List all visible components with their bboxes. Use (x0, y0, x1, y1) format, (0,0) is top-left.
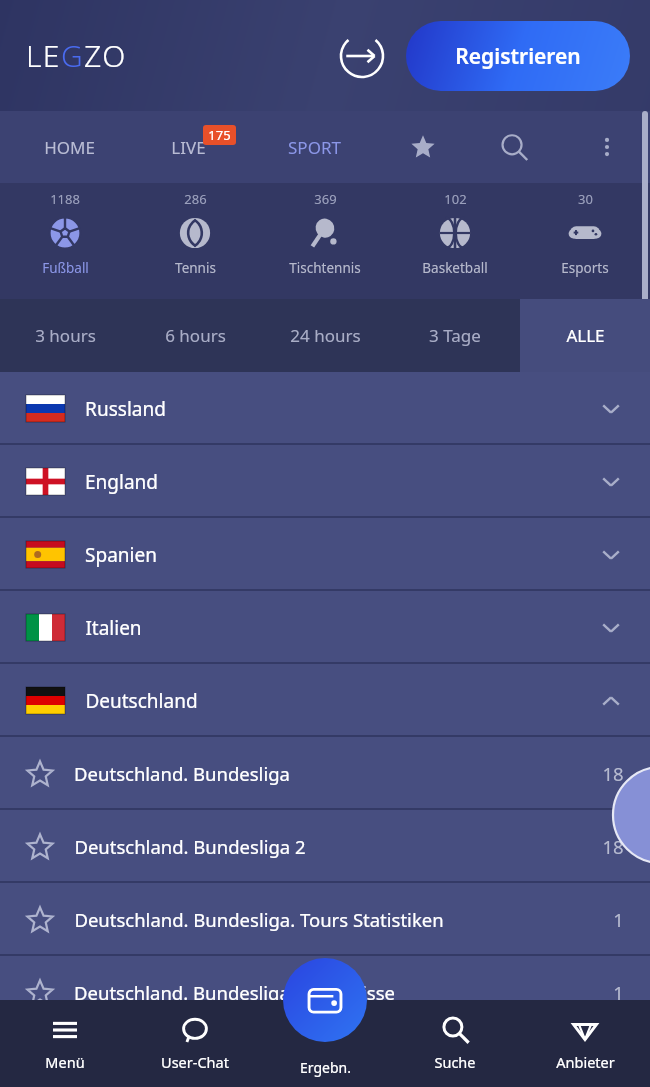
staticText: Deutschland. Bundesliga. Tours Statistik… (74, 907, 444, 932)
button[interactable]: Search (483, 116, 545, 178)
button[interactable]: Login (334, 28, 390, 84)
staticText: User-Chat (161, 1052, 229, 1072)
button[interactable]: Russland (0, 372, 650, 445)
button[interactable]: 286 (130, 183, 260, 299)
button[interactable]: Favourites (392, 116, 454, 178)
button[interactable]: 6 hours (130, 299, 260, 372)
button[interactable]: Deutschland (0, 664, 650, 737)
button[interactable]: LIVE (133, 111, 243, 183)
staticText: Deutschland. Bundesliga (74, 761, 290, 786)
staticText: 3 Tage (429, 324, 481, 347)
button[interactable]: England (0, 445, 650, 518)
button[interactable]: Spanien (0, 518, 650, 591)
staticText: 1 (613, 907, 624, 932)
staticText: 175 (208, 126, 231, 144)
staticText: Spanien (85, 542, 157, 568)
staticText: 3 hours (35, 324, 96, 347)
button[interactable]: Registrieren (406, 21, 630, 91)
button[interactable]: Deutschland. Bundesliga (0, 737, 650, 810)
staticText: Menü (45, 1052, 85, 1072)
button[interactable]: Italien (0, 591, 650, 664)
button[interactable]: User-Chat (130, 1000, 260, 1087)
button[interactable]: 102 (390, 183, 520, 299)
button[interactable]: LEGZO home (26, 35, 127, 76)
button[interactable]: More options (576, 116, 638, 178)
staticText: Anbieter (556, 1052, 615, 1072)
button[interactable]: SPORT (258, 111, 370, 183)
staticText: 6 hours (165, 324, 226, 347)
staticText: 18 (602, 761, 624, 786)
button[interactable]: 3 hours (0, 299, 130, 372)
staticText: LIVE (171, 136, 206, 159)
button[interactable]: HOME (14, 111, 124, 183)
button[interactable]: 30 (520, 183, 650, 299)
staticText: 30 (578, 190, 593, 208)
button[interactable]: 1188 (0, 183, 130, 299)
staticText: HOME (44, 136, 95, 159)
button[interactable]: Ergebn. (260, 1000, 390, 1087)
staticText: Tennis (175, 259, 216, 277)
staticText: Deutschland. Bundesliga 2 (74, 834, 306, 859)
button[interactable]: Suche (390, 1000, 520, 1087)
staticText: Russland (85, 396, 166, 422)
staticText: LE (26, 35, 61, 76)
button[interactable]: 3 Tage (390, 299, 520, 372)
button[interactable]: 369 (260, 183, 390, 299)
staticText: SPORT (288, 136, 341, 159)
staticText: 286 (184, 190, 207, 208)
staticText: Esports (561, 259, 609, 277)
button[interactable]: Deutschland. Bundesliga. Tours Statistik… (0, 883, 650, 956)
staticText: ALLE (566, 324, 605, 347)
staticText: 1188 (50, 190, 80, 208)
staticText: 102 (444, 190, 467, 208)
staticText: Deutschland. Bundesliga. Ergebnisse (74, 980, 395, 1005)
staticText: ZO (84, 35, 127, 76)
staticText: Registrieren (455, 42, 581, 71)
staticText: G (61, 35, 84, 76)
button[interactable]: Deutschland. Bundesliga 2 (0, 810, 650, 883)
staticText: 1 (613, 980, 624, 1005)
button[interactable]: Anbieter (520, 1000, 650, 1087)
button[interactable]: ALLE (520, 299, 650, 372)
staticText: Deutschland (85, 688, 198, 714)
button[interactable]: Wallet (283, 958, 367, 1042)
staticText: Suche (434, 1052, 476, 1072)
staticText: 18 (602, 834, 624, 859)
staticText: Tischtennis (289, 259, 361, 277)
button[interactable]: 24 hours (260, 299, 390, 372)
staticText: 369 (314, 190, 337, 208)
button[interactable]: Deutschland. Bundesliga. Ergebnisse (0, 956, 650, 1029)
staticText: 24 hours (290, 324, 361, 347)
staticText: Ergebn. (300, 1058, 351, 1077)
staticText: Fußball (42, 259, 89, 277)
staticText: Basketball (422, 259, 488, 277)
button[interactable]: Menü (0, 1000, 130, 1087)
staticText: Italien (85, 615, 142, 641)
staticText: England (85, 469, 158, 495)
